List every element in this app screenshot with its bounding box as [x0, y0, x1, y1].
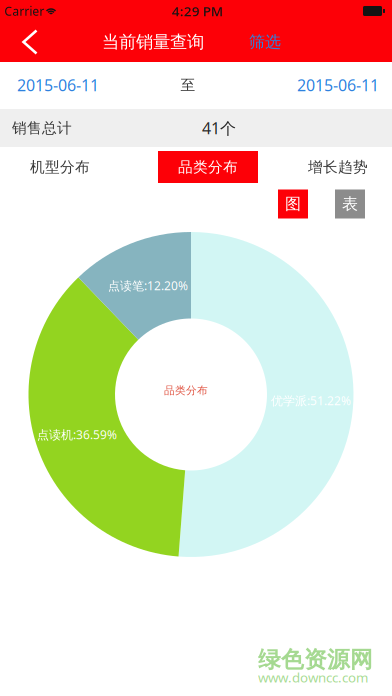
staticText: 优学派:51.22%	[271, 392, 351, 408]
staticText: 图	[285, 194, 301, 214]
staticText: 绿色资源网	[258, 646, 373, 673]
staticText: 41个	[202, 117, 236, 139]
staticText: 当前销量查询	[102, 31, 204, 53]
button[interactable]: 2015-06-11	[0, 62, 129, 108]
staticText: 4:29 PM	[171, 2, 222, 20]
button[interactable]: 筛选	[241, 22, 289, 62]
button[interactable]: 图	[278, 189, 308, 218]
button[interactable]: 品类分布	[158, 151, 258, 183]
staticText: 至	[180, 76, 195, 94]
staticText: 点读笔:12.20%	[108, 277, 188, 293]
button[interactable]: 机型分布	[5, 147, 115, 187]
staticText: 品类分布	[164, 384, 208, 397]
staticText: 品类分布	[178, 158, 238, 176]
staticText: Carrier	[4, 3, 44, 19]
button[interactable]: 2015-06-11	[267, 62, 392, 108]
staticText: 2015-06-11	[17, 74, 99, 96]
staticText: 点读机:36.59%	[37, 426, 117, 442]
button[interactable]: 表	[335, 189, 365, 218]
button[interactable]: 增长趋势	[283, 147, 392, 187]
staticText: 机型分布	[30, 158, 90, 176]
staticText: www.downcc.com	[258, 669, 368, 686]
staticText: 表	[342, 194, 358, 214]
staticText: 筛选	[249, 32, 281, 52]
staticText: 销售总计	[12, 119, 72, 137]
staticText: 增长趋势	[308, 158, 368, 176]
staticText: 2015-06-11	[297, 74, 379, 96]
button[interactable]: Back	[7, 22, 52, 61]
